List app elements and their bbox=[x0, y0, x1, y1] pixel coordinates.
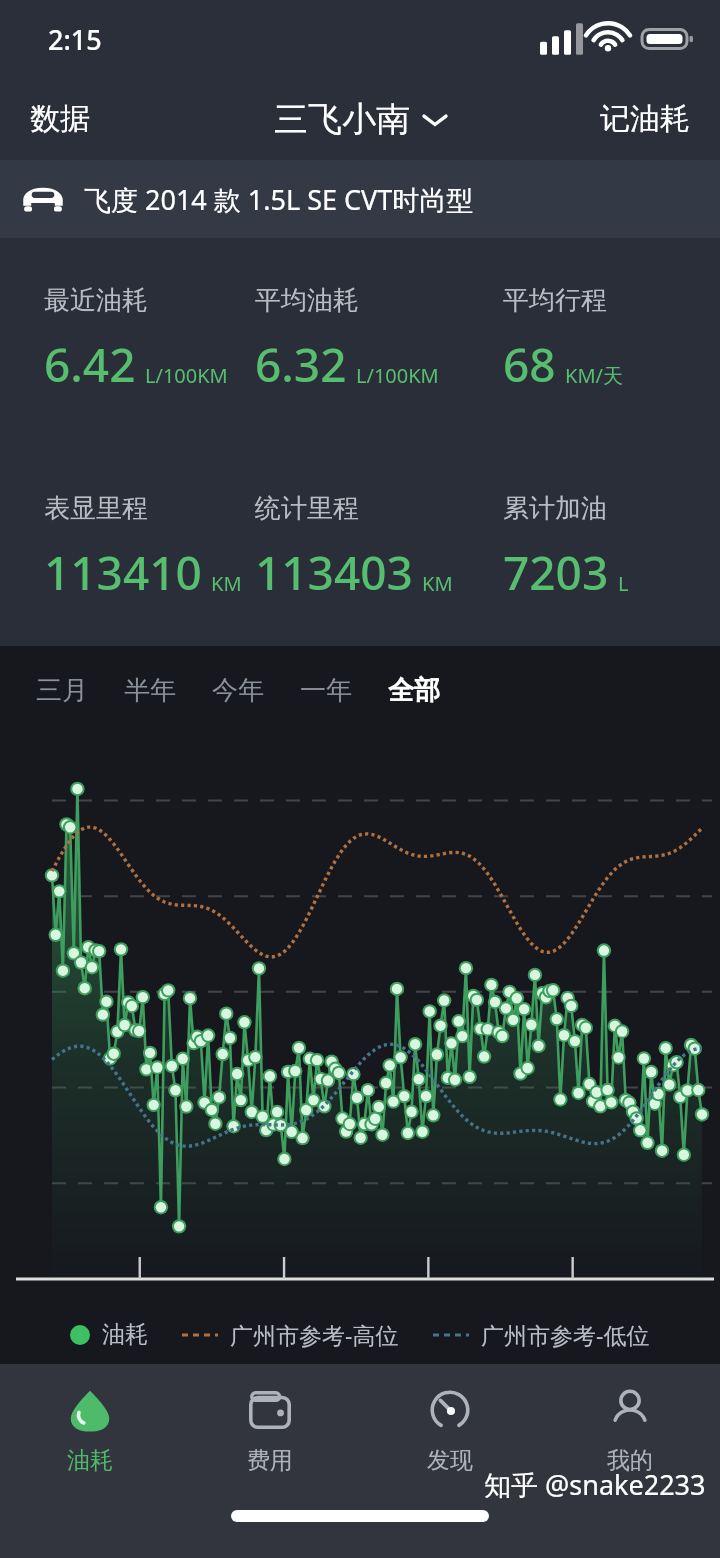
staticText: 全部 bbox=[388, 674, 440, 707]
staticText: 油耗 bbox=[67, 1446, 113, 1475]
staticText: 今年 bbox=[212, 674, 264, 707]
button[interactable]: 平均行程 bbox=[503, 284, 720, 396]
staticText: 三飞小南 bbox=[274, 98, 410, 141]
button[interactable]: 最近油耗 bbox=[44, 284, 249, 396]
button[interactable]: 三飞小南 bbox=[258, 88, 462, 151]
staticText: 6.42 bbox=[44, 333, 136, 396]
staticText: L/100KM bbox=[145, 362, 228, 389]
button[interactable]: 表显里程 bbox=[44, 492, 249, 604]
staticText: 最近油耗 bbox=[44, 284, 148, 317]
staticText: 油耗 bbox=[102, 1320, 148, 1349]
staticText: 半年 bbox=[124, 674, 176, 707]
staticText: 广州市参考-低位 bbox=[481, 1319, 650, 1350]
staticText: KM bbox=[422, 570, 453, 597]
staticText: 三月 bbox=[36, 674, 88, 707]
button[interactable]: 统计里程 bbox=[255, 492, 497, 604]
button[interactable]: 一年 bbox=[282, 666, 370, 715]
button[interactable]: 三月 bbox=[18, 666, 106, 715]
staticText: 知乎 @snake2233 bbox=[484, 1466, 706, 1503]
staticText: L bbox=[618, 570, 629, 597]
staticText: 表显里程 bbox=[44, 492, 148, 525]
staticText: 发现 bbox=[427, 1446, 473, 1475]
button[interactable]: 飞度 2014 款 1.5L SE CVT时尚型 bbox=[0, 160, 720, 238]
staticText: 7203 bbox=[503, 541, 609, 604]
staticText: 平均行程 bbox=[503, 284, 607, 317]
button[interactable]: 平均油耗 bbox=[255, 284, 497, 396]
button[interactable]: 今年 bbox=[194, 666, 282, 715]
staticText: 一年 bbox=[300, 674, 352, 707]
staticText: 费用 bbox=[247, 1446, 293, 1475]
button[interactable]: 半年 bbox=[106, 666, 194, 715]
staticText: KM bbox=[211, 570, 242, 597]
staticText: 我的 bbox=[607, 1446, 653, 1475]
staticText: 记油耗 bbox=[600, 100, 690, 138]
button[interactable]: 油耗 bbox=[0, 1364, 180, 1496]
staticText: 数据 bbox=[30, 100, 90, 138]
button[interactable]: 发现 bbox=[360, 1364, 540, 1496]
staticText: 113410 bbox=[44, 541, 202, 604]
staticText: 113403 bbox=[255, 541, 413, 604]
staticText: 6.32 bbox=[255, 333, 347, 396]
button[interactable]: 记油耗 bbox=[570, 86, 720, 152]
staticText: 2:15 bbox=[48, 21, 102, 58]
staticText: 累计加油 bbox=[503, 492, 607, 525]
button[interactable]: 全部 bbox=[370, 666, 458, 715]
staticText: 飞度 2014 款 1.5L SE CVT时尚型 bbox=[84, 181, 474, 218]
button[interactable]: 费用 bbox=[180, 1364, 360, 1496]
staticText: KM/天 bbox=[565, 362, 623, 389]
staticText: 68 bbox=[503, 333, 556, 396]
staticText: 统计里程 bbox=[255, 492, 359, 525]
staticText: 平均油耗 bbox=[255, 284, 359, 317]
button[interactable]: 数据 bbox=[0, 86, 120, 152]
button[interactable]: 我的 bbox=[540, 1364, 720, 1496]
button[interactable]: 累计加油 bbox=[503, 492, 720, 604]
staticText: 广州市参考-高位 bbox=[230, 1319, 399, 1350]
staticText: L/100KM bbox=[356, 362, 439, 389]
